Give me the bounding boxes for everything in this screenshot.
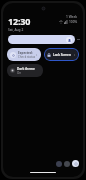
button[interactable]: Add bbox=[72, 160, 79, 167]
staticText: On bbox=[17, 71, 22, 75]
button[interactable]: Expected: pre bbox=[7, 48, 41, 61]
button[interactable]: Option one bbox=[56, 161, 62, 167]
staticText: Dark theme bbox=[17, 67, 35, 71]
staticText: Check status bbox=[18, 55, 36, 59]
staticText: Lock Screen bbox=[53, 53, 74, 57]
staticText: Expected: pre bbox=[18, 51, 36, 55]
staticText: 100% bbox=[69, 20, 78, 24]
button[interactable]: Profile bbox=[8, 35, 75, 44]
staticText: › bbox=[36, 52, 38, 57]
staticText: 12:30 bbox=[8, 15, 31, 27]
button[interactable]: Dark theme bbox=[7, 64, 43, 77]
button[interactable]: Option two bbox=[64, 161, 70, 167]
staticText: Sat, Aug 2 bbox=[8, 28, 24, 32]
staticText: 1 Week bbox=[66, 15, 78, 19]
other: Profile bbox=[66, 37, 72, 43]
staticText: › bbox=[74, 52, 76, 57]
button[interactable]: Lock Screen bbox=[44, 48, 79, 61]
